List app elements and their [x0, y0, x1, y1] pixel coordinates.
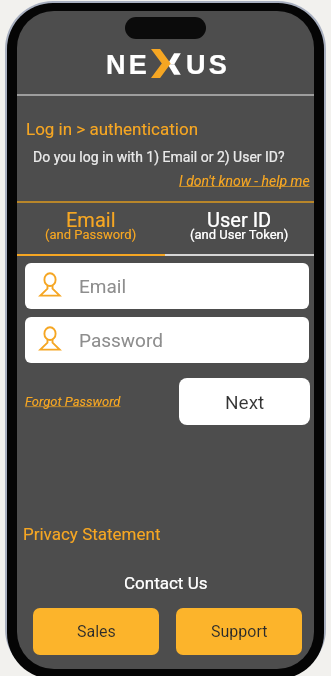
staticText: Next — [225, 391, 265, 413]
staticText: Email — [66, 208, 116, 231]
button[interactable]: Email — [17, 203, 165, 254]
button[interactable]: I don't know - help me — [179, 173, 310, 189]
staticText: User ID — [207, 208, 272, 231]
button[interactable]: Support — [176, 608, 302, 655]
staticText: Sales — [77, 622, 116, 641]
staticText: Do you log in with 1) Email or 2) User I… — [33, 149, 285, 165]
staticText: US — [186, 50, 230, 80]
button[interactable]: Sales — [33, 608, 159, 655]
staticText: Password — [79, 329, 163, 351]
staticText: Log in > authentication — [26, 119, 199, 139]
staticText: Email — [79, 275, 127, 297]
button[interactable]: Privacy Statement — [23, 524, 161, 544]
staticText: NE — [106, 50, 150, 80]
staticText: (and Password) — [45, 227, 137, 242]
button[interactable]: Next — [179, 378, 310, 425]
button[interactable]: Forgot Password — [25, 394, 121, 409]
button[interactable]: User ID — [165, 203, 314, 254]
button[interactable]: Email — [25, 263, 309, 309]
staticText: Support — [211, 622, 268, 641]
staticText: Contact Us — [124, 573, 208, 593]
staticText: (and User Token) — [190, 227, 289, 242]
button[interactable]: Password — [25, 317, 309, 363]
